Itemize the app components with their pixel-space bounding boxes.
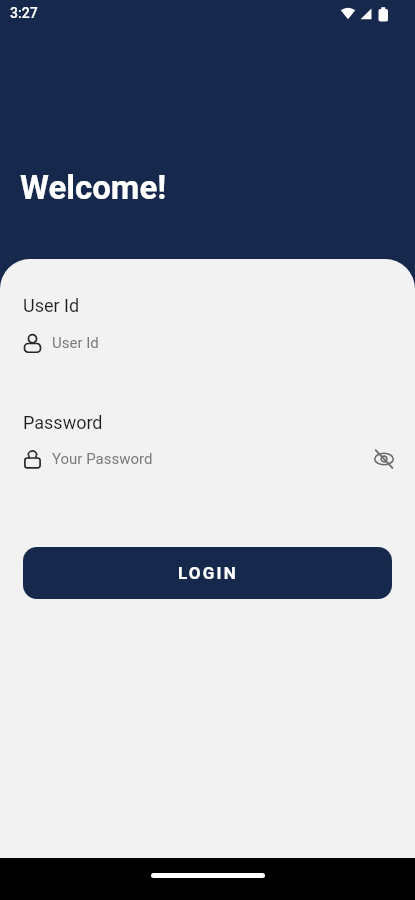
staticText: Your Password [52,450,153,468]
staticText: User Id [23,295,80,316]
staticText: LOGIN [178,563,238,583]
staticText: 3:27 [10,5,38,21]
button[interactable] [373,448,395,470]
button[interactable]: LOGIN [23,547,392,599]
button[interactable]: Your Password [23,447,392,471]
staticText: User Id [52,334,99,352]
staticText: Welcome! [20,168,167,207]
button[interactable]: User Id [23,331,392,355]
staticText: Password [23,412,103,433]
